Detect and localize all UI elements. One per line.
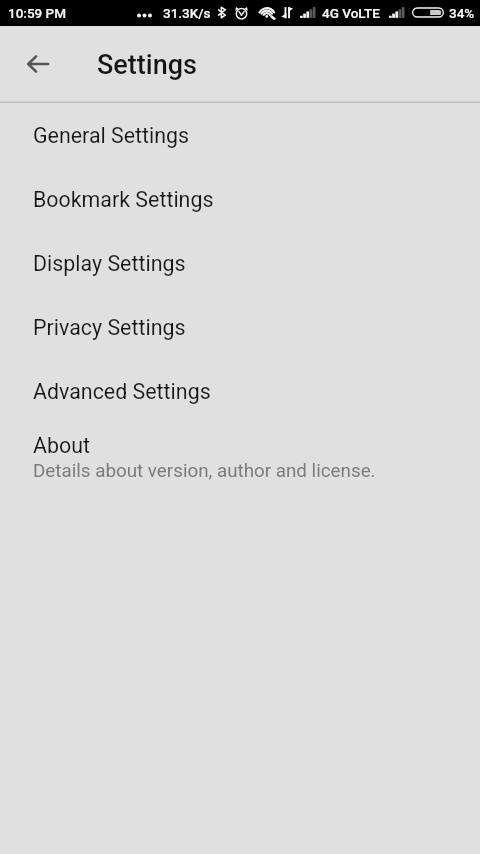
button[interactable]: Navigate up <box>14 40 62 88</box>
staticText: About <box>33 433 90 458</box>
staticText: Settings <box>97 49 197 81</box>
button[interactable]: Display Settings <box>0 231 480 295</box>
staticText: Details about version, author and licens… <box>33 460 376 482</box>
button[interactable]: About <box>0 423 480 498</box>
staticText: 31.3K/s <box>163 5 211 21</box>
button[interactable]: General Settings <box>0 103 480 167</box>
staticText: General Settings <box>33 123 190 148</box>
button[interactable]: Privacy Settings <box>0 295 480 359</box>
button[interactable]: Bookmark Settings <box>0 167 480 231</box>
staticText: Privacy Settings <box>33 315 186 340</box>
staticText: 10:59 PM <box>8 5 67 21</box>
staticText: Bookmark Settings <box>33 187 214 212</box>
staticText: 34% <box>449 5 475 21</box>
staticText: 4G VoLTE <box>322 5 380 21</box>
staticText: Display Settings <box>33 251 186 276</box>
button[interactable]: Advanced Settings <box>0 359 480 423</box>
staticText: Advanced Settings <box>33 379 211 404</box>
